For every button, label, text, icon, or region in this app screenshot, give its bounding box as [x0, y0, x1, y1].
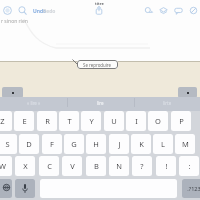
button[interactable]: lire — [67, 99, 134, 107]
button[interactable]: P — [171, 111, 191, 131]
button[interactable]: D — [19, 134, 39, 154]
staticText: : — [188, 161, 191, 171]
button[interactable]: Z — [0, 111, 12, 131]
staticText: V — [70, 161, 75, 171]
button[interactable]: .?123 — [182, 179, 200, 198]
staticText: W — [0, 161, 6, 171]
other: Dictate — [22, 184, 28, 193]
button[interactable]: More — [189, 6, 198, 15]
button[interactable]: : — [179, 156, 199, 176]
staticText: M — [182, 139, 189, 149]
button[interactable]: lirte — [134, 99, 200, 107]
button[interactable]: S — [0, 134, 17, 154]
staticText: B — [94, 161, 99, 171]
button[interactable]: Share — [94, 5, 104, 15]
button[interactable]: W — [0, 156, 12, 176]
button[interactable]: V — [62, 156, 82, 176]
staticText: O — [155, 116, 161, 126]
button[interactable]: L — [153, 134, 173, 154]
staticText: C — [47, 161, 52, 171]
other: Next keyboard — [3, 184, 10, 191]
button[interactable]: Dock right — [178, 87, 197, 98]
staticText: r sinon rien — [1, 18, 28, 25]
staticText: Z — [0, 116, 5, 126]
button[interactable]: T — [59, 111, 79, 131]
button[interactable]: U — [104, 111, 124, 131]
button[interactable]: M — [175, 134, 195, 154]
button[interactable]: Search — [18, 6, 27, 15]
staticText: I — [135, 116, 138, 126]
button[interactable] — [0, 179, 12, 198]
button[interactable]: F — [42, 134, 62, 154]
staticText: N — [116, 161, 122, 171]
staticText: G — [71, 139, 77, 149]
staticText: P — [179, 116, 184, 126]
button[interactable]: J — [109, 134, 129, 154]
staticText: R — [45, 116, 50, 126]
staticText: E — [22, 116, 27, 126]
staticText: L — [161, 139, 165, 149]
button[interactable]: Insert — [144, 6, 153, 15]
staticText: Y — [89, 116, 94, 126]
button[interactable]: Layers — [159, 6, 168, 15]
staticText: Redo — [43, 8, 56, 15]
button[interactable]: Shapes — [3, 6, 12, 15]
button[interactable]: I — [126, 111, 146, 131]
button[interactable]: Redo — [43, 8, 56, 15]
button[interactable]: N — [109, 156, 129, 176]
button[interactable]: ! — [156, 156, 176, 176]
staticText: U — [111, 116, 117, 126]
button[interactable]: Comment — [174, 6, 183, 15]
staticText: T — [67, 116, 72, 126]
staticText: Undo — [33, 8, 47, 15]
button[interactable]: C — [39, 156, 59, 176]
staticText: ? — [140, 161, 144, 171]
button[interactable]: Y — [81, 111, 101, 131]
staticText: F — [50, 139, 54, 149]
staticText: .?123 — [187, 185, 200, 192]
staticText: X — [23, 161, 28, 171]
staticText: titre — [95, 1, 104, 6]
staticText: Se reproduire — [83, 62, 112, 68]
button[interactable] — [15, 179, 35, 198]
staticText: H — [93, 139, 99, 149]
staticText: S — [5, 139, 10, 149]
button[interactable]: G — [64, 134, 84, 154]
button[interactable]: Dock left — [2, 87, 23, 98]
button[interactable]: R — [37, 111, 57, 131]
button[interactable]: Undo — [33, 8, 47, 15]
button[interactable]: H — [86, 134, 106, 154]
staticText: « lire » — [27, 100, 41, 106]
staticText: J — [118, 139, 121, 149]
button[interactable]: X — [15, 156, 35, 176]
staticText: lirte — [163, 100, 172, 106]
button[interactable]: Se reproduire — [77, 60, 118, 69]
button[interactable]: E — [14, 111, 34, 131]
button[interactable]: r sinon rien — [1, 18, 28, 25]
staticText: ! — [165, 161, 168, 171]
button[interactable]: K — [131, 134, 151, 154]
staticText: lire — [97, 100, 104, 106]
button[interactable]: O — [148, 111, 168, 131]
staticText: K — [139, 139, 144, 149]
button[interactable]: ? — [132, 156, 152, 176]
button[interactable]: B — [86, 156, 106, 176]
staticText: D — [26, 139, 32, 149]
